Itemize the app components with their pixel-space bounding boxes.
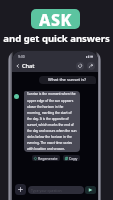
button[interactable]: Send — [85, 186, 96, 194]
staticText: 9:30 — [18, 54, 25, 59]
staticText: ASK — [39, 9, 72, 29]
button[interactable]: Regenerate — [32, 155, 60, 161]
staticText: and get quick answers — [3, 32, 110, 45]
staticText: Sunrise is the moment when the upper edg… — [27, 92, 77, 151]
staticText: Chat — [22, 62, 35, 70]
button[interactable]: Copy — [63, 155, 80, 161]
button[interactable]: New chat — [76, 62, 84, 70]
staticText: What the sunset is? — [48, 77, 87, 83]
button[interactable]: Type your question — [28, 186, 84, 194]
button[interactable]: Attach — [15, 184, 26, 195]
staticText: Copy — [69, 156, 78, 161]
staticText: Regenerate — [38, 156, 58, 161]
button[interactable]: Back — [15, 63, 21, 69]
staticText: Type your question — [31, 188, 62, 193]
button[interactable]: What the sunset is? — [39, 76, 96, 84]
button[interactable]: Share — [87, 62, 95, 70]
